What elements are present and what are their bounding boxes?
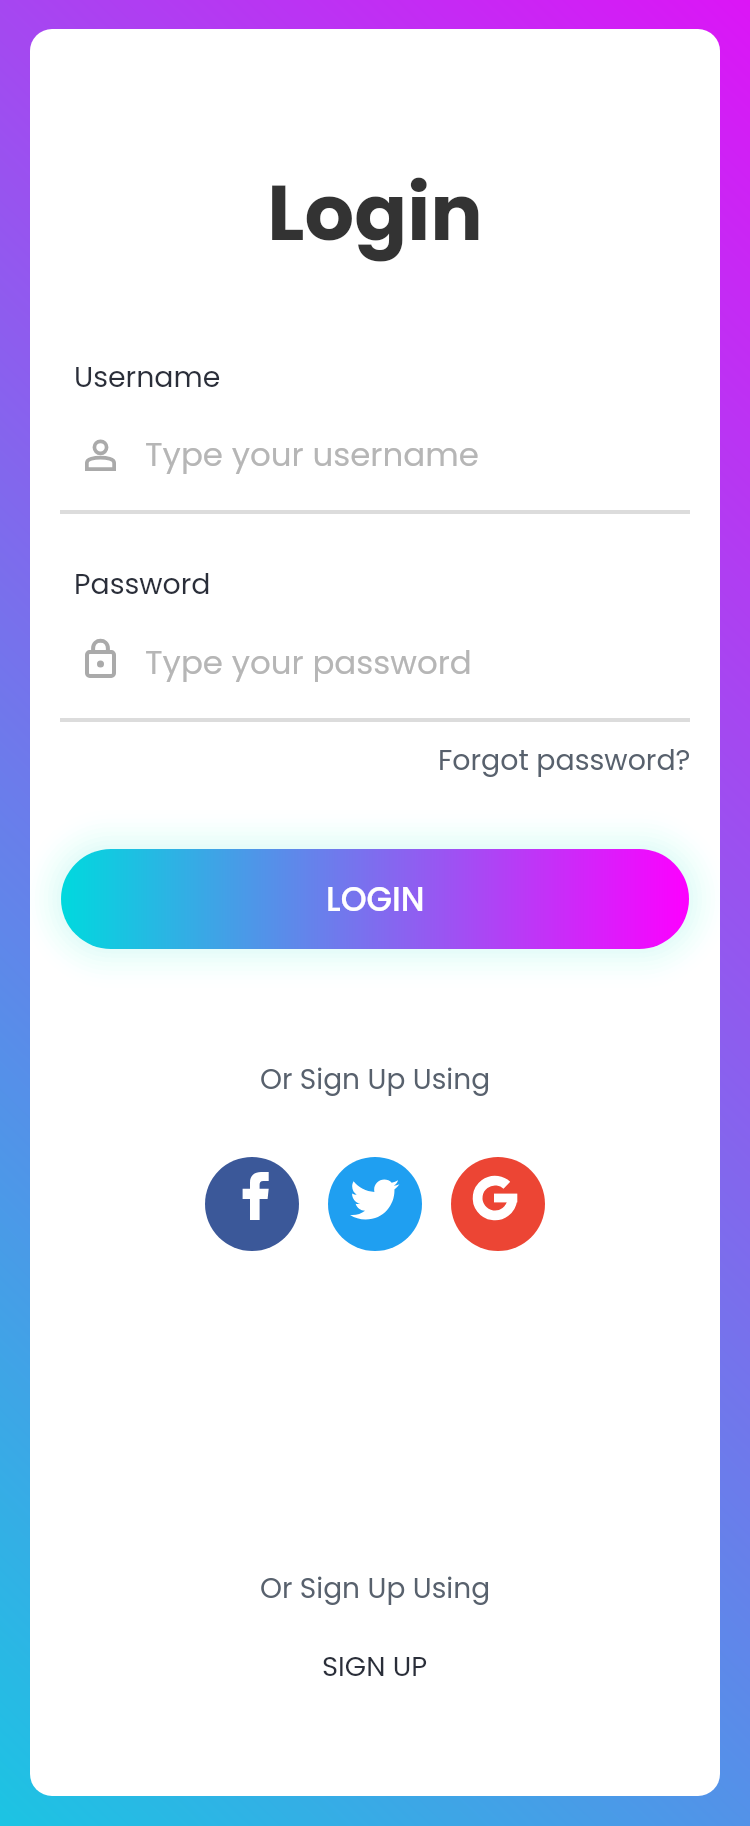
button[interactable]: Facebook (205, 1157, 299, 1251)
staticText: LOGIN (326, 876, 425, 922)
button[interactable]: LOGIN (61, 849, 689, 949)
button[interactable]: Forgot password? (438, 740, 691, 780)
staticText: Type your password (145, 640, 472, 686)
staticText: Password (74, 564, 211, 604)
staticText: Or Sign Up Using (30, 1060, 720, 1099)
button[interactable]: Google (451, 1157, 545, 1251)
staticText: Type your username (145, 432, 479, 478)
staticText: Username (74, 357, 221, 397)
staticText: Login (30, 158, 720, 267)
button[interactable]: SIGN UP (322, 1647, 428, 1685)
staticText: Or Sign Up Using (30, 1569, 720, 1608)
button[interactable]: Twitter (328, 1157, 422, 1251)
